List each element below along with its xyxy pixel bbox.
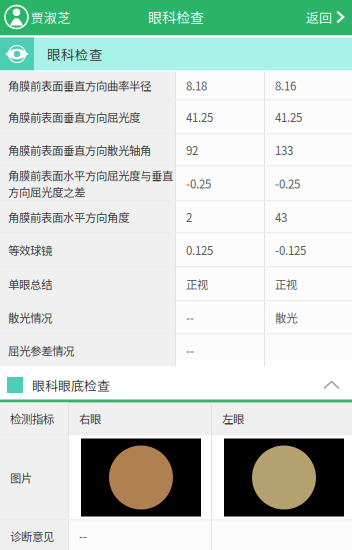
staticText: 右眼: [79, 410, 101, 427]
button[interactable]: 返回: [306, 0, 352, 35]
staticText: 角膜前表面水平方向屈光度与垂直 方向屈光度之差: [8, 167, 173, 200]
staticText: 8.18: [186, 77, 207, 94]
staticText: 散光情况: [8, 309, 52, 326]
staticText: 单眼总结: [8, 276, 52, 292]
staticText: 0.125: [186, 242, 213, 258]
staticText: 角膜前表面垂直方向屈光度: [8, 109, 140, 125]
staticText: 8.16: [275, 77, 296, 94]
staticText: 检测指标: [10, 410, 54, 427]
staticText: --: [186, 309, 194, 326]
button[interactable]: 贾淑芝: [0, 0, 70, 35]
staticText: 43: [275, 209, 287, 225]
staticText: 等效球镜: [8, 242, 52, 258]
button[interactable]: 眼科眼底检查: [0, 370, 352, 399]
staticText: 2: [186, 209, 192, 225]
staticText: 贾淑芝: [31, 8, 70, 26]
staticText: 角膜前表面垂直方向散光轴角: [8, 142, 151, 158]
staticText: 眼科检查: [148, 7, 204, 27]
staticText: 左眼: [222, 410, 244, 427]
staticText: 眼科检查: [47, 44, 103, 64]
staticText: 正视: [186, 276, 208, 292]
staticText: 正视: [275, 276, 297, 292]
staticText: 41.25: [275, 109, 302, 125]
staticText: 诊断意见: [10, 528, 54, 544]
staticText: 角膜前表面垂直方向曲率半径: [8, 77, 151, 94]
staticText: -0.25: [186, 175, 211, 192]
staticText: --: [186, 342, 194, 359]
staticText: 返回: [306, 8, 332, 26]
staticText: --: [79, 528, 87, 544]
staticText: 眼科眼底检查: [32, 376, 110, 394]
staticText: 散光: [275, 309, 297, 326]
staticText: -0.25: [275, 175, 300, 192]
staticText: -0.125: [275, 242, 306, 258]
staticText: 屈光参差情况: [8, 342, 74, 359]
staticText: 92: [186, 142, 198, 158]
staticText: 角膜前表面水平方向角度: [8, 209, 129, 225]
staticText: 41.25: [186, 109, 213, 125]
staticText: 图片: [10, 469, 32, 486]
staticText: 133: [275, 142, 293, 158]
